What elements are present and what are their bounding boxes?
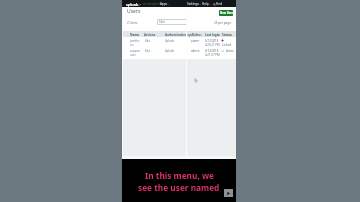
- staticText: Find: [216, 2, 223, 6]
- staticText: 4:25:21 PM: [205, 43, 220, 47]
- staticText: 4:21:57 PM: [205, 53, 220, 57]
- staticText: New User: [220, 11, 233, 15]
- staticText: splunk: [126, 2, 139, 7]
- staticText: jsmiths: [130, 39, 140, 43]
- button[interactable]: New User: [219, 10, 233, 16]
- button[interactable]: 25 per page: [214, 21, 233, 25]
- staticText: Last login: [205, 33, 220, 37]
- staticText: Apps: [160, 2, 168, 6]
- staticText: Settings: [187, 2, 199, 6]
- staticText: 6/12/2018: [205, 39, 219, 43]
- staticText: Edit: [145, 49, 151, 53]
- staticText: on: [130, 43, 134, 47]
- staticText: Edit: [145, 39, 151, 43]
- staticText: 25 per page: [214, 21, 231, 25]
- button[interactable]: filter: [157, 19, 187, 25]
- button[interactable]: Settings: [187, 2, 201, 6]
- staticText: support: [130, 49, 141, 53]
- staticText: Splunk: [165, 49, 174, 53]
- staticText: Locked: [222, 43, 232, 47]
- staticText: 6/14/2018: [205, 49, 219, 53]
- staticText: >: [139, 2, 142, 7]
- staticText: Active: [226, 49, 234, 53]
- staticText: see the user named: [138, 182, 220, 193]
- button[interactable]: Next: [224, 189, 233, 197]
- staticText: filter: [159, 20, 166, 24]
- staticText: Authentication sys: [165, 33, 193, 37]
- button[interactable]: Find: [213, 2, 223, 6]
- button[interactable]: support: [122, 48, 236, 59]
- staticText: Help: [202, 2, 209, 6]
- staticText: Splunk: [165, 39, 174, 43]
- staticText: Roles: [192, 33, 201, 37]
- staticText: admin: [191, 49, 200, 53]
- staticText: Users: [127, 8, 141, 15]
- staticText: Status: [222, 33, 232, 37]
- staticText: user: [130, 53, 136, 57]
- button[interactable]: jsmiths: [122, 38, 236, 49]
- staticText: enterprise: [143, 1, 164, 7]
- staticText: Actions: [144, 33, 156, 37]
- staticText: In this menu, we: [145, 170, 214, 181]
- button[interactable]: Help: [202, 2, 211, 6]
- staticText: Name: [130, 33, 139, 37]
- staticText: power: [191, 39, 200, 43]
- staticText: 2 Users: [127, 21, 138, 25]
- button[interactable]: Apps: [160, 2, 170, 6]
